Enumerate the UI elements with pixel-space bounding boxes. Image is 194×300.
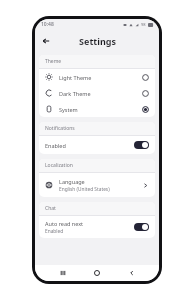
button[interactable]: Auto read next bbox=[39, 216, 155, 238]
button[interactable]: Light Theme bbox=[39, 69, 155, 85]
staticText: Light Theme bbox=[59, 74, 142, 81]
button[interactable]: Enabled bbox=[39, 136, 155, 154]
staticText: English (United States) bbox=[59, 186, 110, 193]
staticText: Theme bbox=[45, 58, 62, 65]
button[interactable]: Back bbox=[125, 266, 139, 280]
staticText: Notifications bbox=[45, 125, 75, 132]
staticText: Localization bbox=[45, 162, 73, 169]
button[interactable]: Back bbox=[38, 33, 54, 49]
staticText: Enabled bbox=[45, 142, 134, 149]
staticText: Dark Theme bbox=[59, 90, 142, 97]
staticText: 98 bbox=[141, 22, 146, 27]
staticText: Auto read next bbox=[45, 220, 84, 227]
staticText: 10:48 bbox=[41, 21, 54, 28]
button[interactable]: Recents bbox=[56, 266, 70, 280]
button[interactable]: System bbox=[39, 101, 155, 117]
staticText: Chat bbox=[45, 205, 56, 212]
button[interactable]: Home bbox=[90, 266, 104, 280]
staticText: System bbox=[59, 106, 142, 113]
staticText: Language bbox=[59, 178, 85, 185]
staticText: Enabled bbox=[45, 228, 64, 235]
staticText: Settings bbox=[79, 35, 116, 47]
button[interactable]: Language bbox=[39, 173, 155, 197]
button[interactable]: Dark Theme bbox=[39, 85, 155, 101]
